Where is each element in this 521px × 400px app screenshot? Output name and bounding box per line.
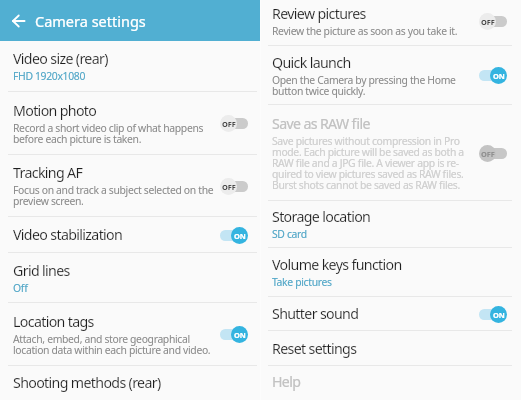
button[interactable]: Quick launch [261,46,521,104]
button[interactable]: Switch off [220,177,248,195]
staticText: OFF [222,119,236,129]
button[interactable]: Shutter sound [261,297,521,330]
button[interactable]: Switch on [479,305,507,323]
staticText: ON [234,330,246,340]
button[interactable]: Switch on [220,226,248,244]
staticText: Off [13,283,28,294]
staticText: Focus on and track a subject selected on… [13,185,214,207]
staticText: Attach, embed, and store geographical lo… [13,334,211,356]
staticText: Shooting methods (rear) [13,376,161,391]
button[interactable]: Switch off [479,144,507,162]
staticText: OFF [481,17,495,27]
staticText: Video stabilization [13,228,123,243]
staticText: ON [234,231,246,241]
staticText: Help [272,375,301,390]
button[interactable]: Volume keys function [261,248,521,296]
button[interactable]: Back [3,6,33,36]
staticText: Save as RAW file [272,117,370,132]
button[interactable]: Reset settings [261,331,521,365]
button[interactable]: Storage location [261,201,521,247]
staticText: OFF [481,149,495,159]
staticText: Review the picture as soon as you take i… [272,26,458,37]
button[interactable]: Switch on [220,325,248,343]
button[interactable]: Help [261,366,521,397]
staticText: Volume keys function [272,258,402,273]
staticText: Tracking AF [13,166,83,181]
staticText: Save pictures without compression in Pro… [272,136,464,191]
button[interactable]: Tracking AF [0,155,260,216]
staticText: Video size (rear) [13,52,108,67]
staticText: Shutter sound [272,307,359,322]
button[interactable]: Grid lines [0,253,260,302]
button[interactable]: Switch off [479,12,507,30]
button[interactable]: Switch on [479,66,507,84]
staticText: OFF [222,182,236,192]
staticText: Storage location [272,210,371,225]
staticText: Record a short video clip of what happen… [13,123,204,145]
button[interactable]: Video size (rear) [0,41,260,91]
button[interactable]: Location tags [0,303,260,365]
staticText: ON [493,310,505,320]
staticText: Location tags [13,315,94,330]
button[interactable]: Save as RAW file [261,105,521,200]
button[interactable]: Review pictures [261,0,521,45]
button[interactable]: Motion photo [0,92,260,154]
button[interactable]: Shooting methods (rear) [0,366,260,399]
staticText: FHD 1920x1080 [13,71,86,82]
button[interactable]: Video stabilization [0,217,260,252]
staticText: Quick launch [272,56,351,71]
staticText: Take pictures [272,277,332,288]
staticText: Motion photo [13,104,97,119]
staticText: Open the Camera by pressing the Home but… [272,75,456,97]
staticText: ON [493,71,505,81]
staticText: Review pictures [272,7,366,22]
staticText: Grid lines [13,264,70,279]
staticText: Reset settings [272,342,357,357]
staticText: Camera settings [35,11,146,31]
staticText: SD card [272,229,307,240]
button[interactable]: Switch off [220,114,248,132]
